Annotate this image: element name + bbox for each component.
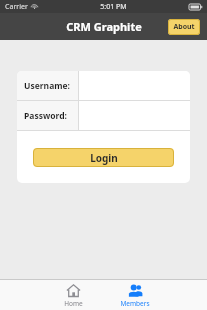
staticText: Carrier <box>5 2 28 12</box>
staticText: CRM Graphite <box>66 19 142 34</box>
staticText: 5:01 PM <box>100 2 127 12</box>
staticText: Home <box>64 299 83 308</box>
other: Home <box>66 283 81 298</box>
staticText: Username: <box>24 80 70 92</box>
button[interactable]: About <box>168 19 200 35</box>
button[interactable]: Login <box>33 148 174 167</box>
other: Members <box>128 283 143 298</box>
staticText: Login <box>90 151 118 165</box>
button[interactable]: Home <box>51 280 95 310</box>
staticText: Members <box>120 299 150 308</box>
staticText: About <box>173 22 195 32</box>
button[interactable]: Members <box>113 280 157 310</box>
staticText: Password: <box>24 110 67 122</box>
button[interactable]: Password: <box>17 101 190 130</box>
button[interactable]: Username: <box>17 71 190 100</box>
